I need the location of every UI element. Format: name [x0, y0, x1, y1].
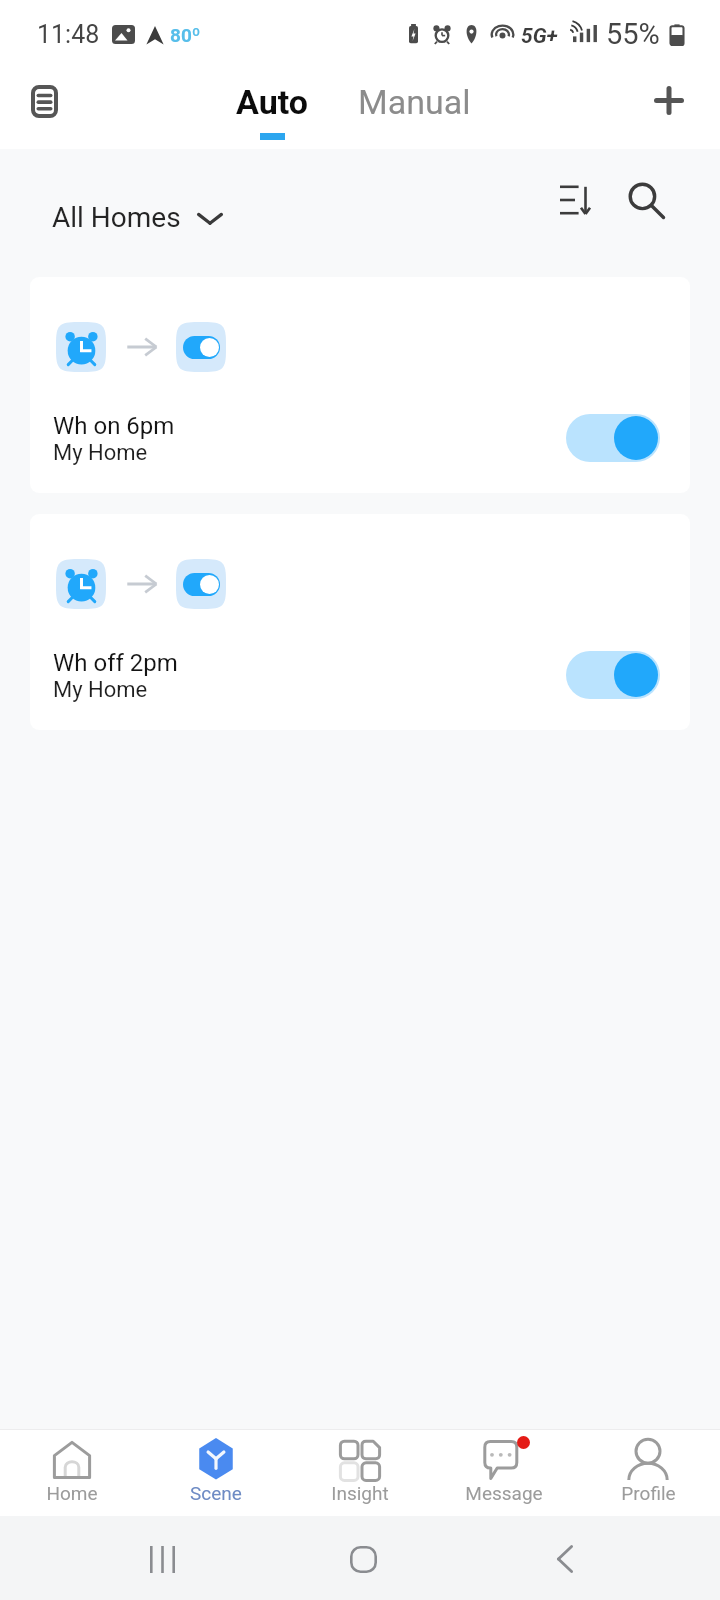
- staticText: Message: [465, 1482, 543, 1504]
- button[interactable]: Home: [0, 1430, 144, 1516]
- button[interactable]: Add: [639, 70, 699, 130]
- staticText: My Home: [53, 440, 148, 466]
- button[interactable]: Search: [617, 171, 675, 229]
- staticText: 5G+: [521, 24, 558, 49]
- staticText: Profile: [621, 1482, 676, 1504]
- button[interactable]: Enable automation: [566, 414, 660, 462]
- staticText: Auto: [236, 82, 308, 122]
- button[interactable]: Profile: [576, 1430, 720, 1516]
- button[interactable]: Home: [332, 1528, 394, 1590]
- button[interactable]: Back: [534, 1528, 596, 1590]
- staticText: Home: [46, 1482, 98, 1504]
- button[interactable]: All Homes: [38, 189, 237, 246]
- button[interactable]: Wh off 2pm: [30, 514, 690, 730]
- staticText: Wh on 6pm: [53, 412, 175, 440]
- button[interactable]: Insight: [288, 1430, 432, 1516]
- staticText: Insight: [331, 1482, 389, 1504]
- staticText: Manual: [358, 82, 471, 122]
- staticText: 11:48: [37, 20, 100, 49]
- button[interactable]: Message: [432, 1430, 576, 1516]
- button[interactable]: Sort: [546, 171, 604, 229]
- staticText: 80º: [170, 24, 201, 46]
- staticText: All Homes: [52, 201, 181, 234]
- button[interactable]: Enable automation: [566, 651, 660, 699]
- button[interactable]: Wh on 6pm: [30, 277, 690, 493]
- staticText: 55%: [606, 17, 660, 51]
- staticText: Scene: [190, 1482, 242, 1504]
- button[interactable]: History: [14, 71, 74, 131]
- button[interactable]: Auto: [220, 78, 324, 140]
- button[interactable]: Scene: [144, 1430, 288, 1516]
- staticText: Wh off 2pm: [53, 649, 178, 677]
- staticText: My Home: [53, 677, 148, 703]
- button[interactable]: Manual: [342, 78, 487, 140]
- button[interactable]: Recent apps: [131, 1528, 193, 1590]
